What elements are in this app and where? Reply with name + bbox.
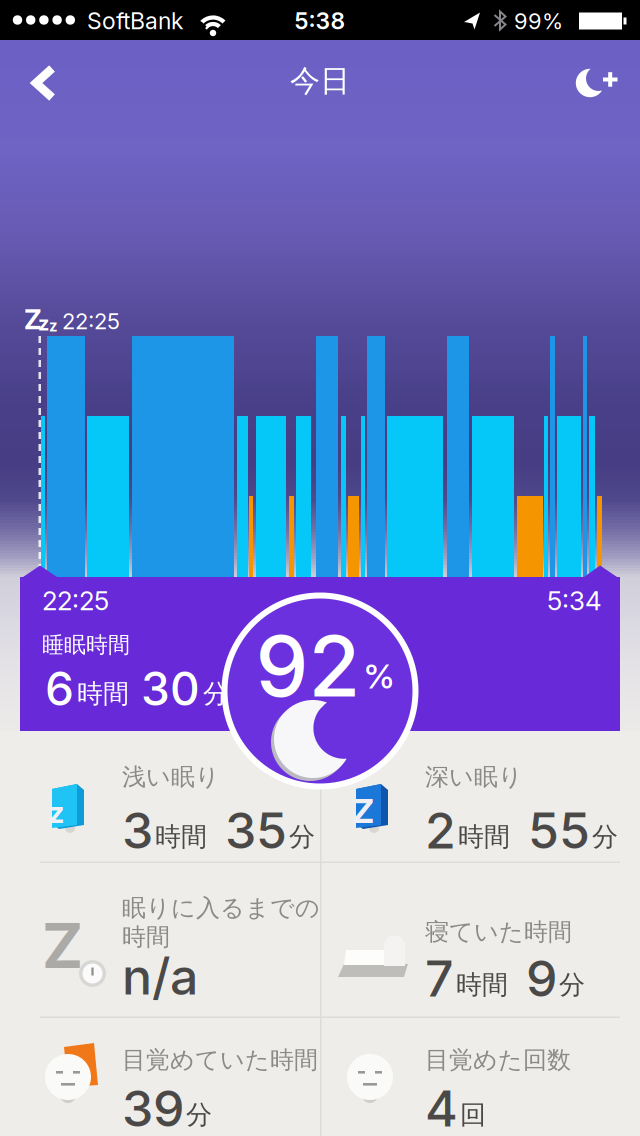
staticText: Z [42, 908, 83, 983]
staticText: Z [24, 303, 42, 336]
staticText: 2 [425, 800, 456, 860]
staticText: 分 [559, 968, 585, 1001]
staticText: 目覚めた回数 [425, 1045, 571, 1075]
staticText: 35 [225, 800, 287, 860]
staticText: 9 [526, 948, 557, 1008]
staticText: 39 [122, 1078, 184, 1136]
staticText: 22:25 [42, 585, 109, 616]
staticText: 55 [528, 800, 590, 860]
staticText: 眠りに入るまでの [122, 893, 320, 923]
staticText: 5:34 [547, 585, 602, 616]
staticText: 深い眠り [425, 762, 523, 792]
staticText: 浅い眠り [122, 762, 220, 792]
staticText: 30 [141, 661, 200, 717]
staticText: 時間 [77, 677, 129, 710]
staticText: 目覚めていた時間 [122, 1045, 318, 1075]
staticText: 99% [514, 8, 563, 35]
staticText: 22:25 [62, 308, 120, 335]
staticText: 睡眠時間 [42, 631, 130, 659]
staticText: 5:38 [294, 7, 345, 35]
staticText: % [363, 655, 394, 696]
staticText: 時間 [122, 922, 170, 952]
staticText: n/a [122, 946, 198, 1006]
staticText: 7 [425, 948, 454, 1008]
staticText: 92 [255, 615, 360, 717]
staticText: 分 [203, 677, 229, 710]
button[interactable]: Back [0, 0, 70, 124]
staticText: 分 [289, 820, 315, 853]
staticText: 時間 [456, 968, 508, 1001]
staticText: 分 [592, 820, 618, 853]
staticText: z [48, 794, 64, 830]
staticText: Z [352, 790, 374, 831]
button[interactable]: Add sleep [550, 0, 640, 124]
staticText: 回 [460, 1098, 486, 1131]
staticText: 3 [122, 800, 153, 860]
staticText: 時間 [458, 820, 510, 853]
staticText: z [38, 311, 49, 335]
staticText: SoftBank [87, 7, 183, 35]
staticText: z [49, 317, 58, 335]
staticText: 今日 [290, 62, 350, 100]
staticText: 6 [45, 661, 74, 717]
staticText: 分 [186, 1098, 212, 1131]
staticText: 4 [425, 1078, 458, 1136]
staticText: 時間 [155, 820, 207, 853]
staticText: 寝ていた時間 [425, 917, 572, 947]
